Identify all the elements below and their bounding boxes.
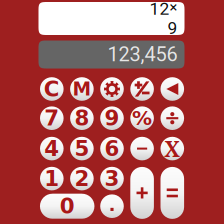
button[interactable]: M [70, 77, 94, 101]
staticText: 12 [149, 0, 169, 19]
button[interactable]: 1 [40, 167, 64, 190]
staticText: 1 [44, 166, 59, 191]
button[interactable]: Equals [160, 167, 184, 219]
staticText: X [164, 134, 180, 163]
button[interactable]: 8 [70, 106, 94, 130]
staticText: × [169, 0, 177, 16]
button[interactable]: 2 [70, 167, 94, 190]
button[interactable]: 3 [100, 167, 124, 190]
staticText: 0 [60, 194, 75, 219]
button[interactable]: Decimal point [100, 194, 124, 218]
button[interactable]: Minus [130, 137, 154, 160]
button[interactable]: 5 [70, 137, 94, 160]
button[interactable]: C [40, 77, 64, 101]
staticText: 3 [104, 166, 119, 191]
button[interactable]: Plus [130, 167, 154, 219]
button[interactable]: 9 [100, 106, 124, 130]
button[interactable]: Backspace [160, 77, 184, 101]
button[interactable]: X [160, 137, 184, 160]
button[interactable]: 4 [40, 137, 64, 160]
staticText: 4 [44, 136, 59, 161]
staticText: 2 [74, 166, 89, 191]
staticText: 5 [74, 136, 89, 161]
button[interactable]: 0 [40, 194, 94, 219]
button[interactable]: 7 [40, 106, 64, 130]
button[interactable]: % [130, 106, 154, 130]
staticText: 9 [104, 106, 119, 131]
staticText: % [132, 107, 152, 130]
staticText: 6 [104, 136, 119, 161]
staticText: 8 [74, 106, 89, 131]
button[interactable]: Settings [100, 77, 124, 101]
staticText: M [72, 78, 91, 100]
button[interactable]: Divide [160, 106, 184, 130]
staticText: 9 [167, 18, 177, 38]
staticText: 7 [44, 106, 59, 131]
staticText: C [44, 77, 60, 101]
button[interactable]: Plus minus [130, 77, 154, 101]
staticText: 123,456 [107, 43, 177, 66]
button[interactable]: 6 [100, 137, 124, 160]
